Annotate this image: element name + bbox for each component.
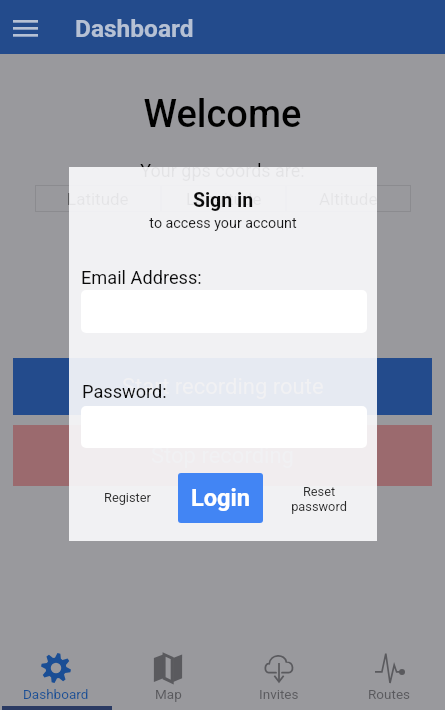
staticText: Dashboard [75,14,194,43]
button[interactable]: Login [178,473,263,523]
button[interactable]: Latitude [35,185,161,212]
staticText: Your gps coords are: [0,160,445,181]
button[interactable]: Dashboard [0,646,112,710]
button[interactable]: Longitude [161,185,286,212]
staticText: Longitude [186,189,262,209]
staticText: Stop recording [151,443,294,469]
staticText: Invites [259,686,299,702]
button[interactable]: Invites [223,646,334,710]
button[interactable]: Reset password [272,474,366,524]
staticText: Welcome [0,92,445,137]
button[interactable]: Map [112,646,223,710]
button[interactable]: Register [83,472,171,522]
staticText: Sign in [69,189,377,212]
staticText: Dashboard [23,686,89,702]
staticText: Login [191,484,251,512]
staticText: Password: [82,381,167,402]
staticText: Routes [368,686,411,702]
staticText: Map [155,686,182,702]
button[interactable]: Altitude [286,185,411,212]
button[interactable]: Stop recording [13,425,432,486]
button[interactable]: Start recording route [13,358,432,415]
staticText: to access your account [69,215,377,232]
staticText: Altitude [319,189,378,209]
staticText: Reset password [291,484,347,514]
staticText: Latitude [67,189,129,209]
staticText: Start recording route [122,374,324,400]
button[interactable]: Open navigation menu [0,0,51,54]
staticText: Email Address: [81,267,202,288]
button[interactable]: Routes [334,646,445,710]
staticText: Register [104,490,151,505]
